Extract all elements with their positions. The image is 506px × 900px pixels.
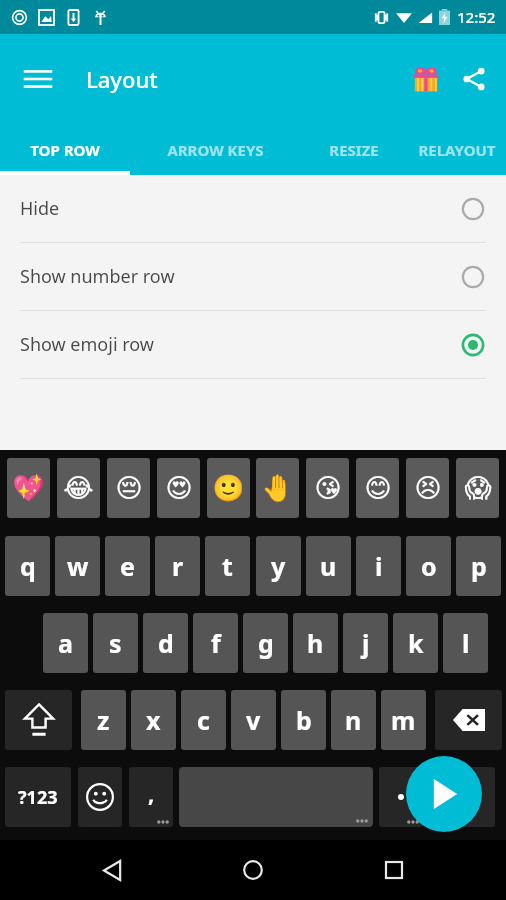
button[interactable]: Emoji — [78, 767, 122, 827]
button[interactable]: 😘 — [306, 458, 349, 518]
button[interactable]: g — [243, 613, 288, 673]
staticText: Show number row — [20, 264, 175, 289]
staticText: q — [20, 549, 36, 583]
button[interactable]: k — [393, 613, 438, 673]
button[interactable]: ARROW KEYS — [130, 124, 300, 175]
staticText: 💖 — [12, 473, 45, 503]
staticText: n — [345, 703, 362, 737]
button[interactable]: Show number row — [0, 243, 506, 310]
button[interactable]: RESIZE — [300, 124, 408, 175]
button[interactable]: ?123 — [5, 767, 71, 827]
staticText: e — [120, 549, 135, 583]
staticText: a — [58, 626, 73, 660]
staticText: ?123 — [18, 785, 58, 810]
button[interactable]: z — [81, 690, 126, 750]
staticText: h — [307, 626, 324, 660]
staticText: 😔 — [115, 473, 143, 503]
staticText: 🙂 — [212, 473, 245, 503]
button[interactable]: Backspace — [435, 690, 502, 750]
button[interactable]: 😍 — [157, 458, 200, 518]
staticText: l — [462, 626, 470, 660]
button[interactable]: , — [129, 767, 173, 827]
button[interactable]: Home — [225, 842, 281, 898]
button[interactable]: 🤚 — [256, 458, 299, 518]
button[interactable]: f — [193, 613, 238, 673]
button[interactable]: RELAYOUT — [408, 124, 506, 175]
staticText: TOP ROW — [30, 140, 100, 160]
staticText: 😍 — [165, 473, 193, 503]
staticText: s — [109, 626, 122, 660]
button[interactable]: 😱 — [456, 458, 499, 518]
button[interactable]: x — [131, 690, 176, 750]
staticText: d — [158, 626, 174, 660]
staticText: 😘 — [314, 473, 342, 503]
button[interactable]: i — [356, 536, 401, 596]
staticText: g — [258, 626, 274, 660]
button[interactable]: Navigation drawer — [14, 55, 62, 103]
staticText: 😊 — [364, 473, 392, 503]
button[interactable]: 😔 — [107, 458, 150, 518]
button[interactable]: e — [105, 536, 150, 596]
button[interactable]: Hide — [0, 175, 506, 242]
button[interactable]: a — [43, 613, 88, 673]
staticText: j — [362, 626, 370, 660]
staticText: Show emoji row — [20, 332, 154, 357]
button[interactable]: o — [406, 536, 451, 596]
button[interactable]: v — [231, 690, 276, 750]
staticText: r — [172, 549, 184, 583]
button[interactable]: n — [331, 690, 376, 750]
staticText: o — [421, 549, 437, 583]
staticText: 😣 — [414, 473, 442, 503]
button[interactable]: c — [181, 690, 226, 750]
button[interactable] — [379, 767, 423, 827]
staticText: t — [222, 549, 233, 583]
staticText: w — [67, 549, 89, 583]
staticText: u — [320, 549, 337, 583]
staticText: RELAYOUT — [418, 140, 496, 160]
staticText: b — [296, 703, 312, 737]
staticText: Layout — [86, 64, 158, 94]
button[interactable]: s — [93, 613, 138, 673]
button[interactable]: u — [306, 536, 351, 596]
button[interactable]: t — [205, 536, 250, 596]
button[interactable]: Back — [85, 842, 141, 898]
staticText: 12:52 — [457, 7, 496, 27]
button[interactable]: q — [5, 536, 50, 596]
staticText: y — [271, 549, 286, 583]
button[interactable]: p — [456, 536, 501, 596]
button[interactable]: y — [256, 536, 301, 596]
button[interactable]: b — [281, 690, 326, 750]
staticText: z — [97, 703, 110, 737]
staticText: RESIZE — [329, 140, 379, 160]
button[interactable]: Share — [450, 55, 498, 103]
staticText: ARROW KEYS — [167, 140, 264, 160]
button[interactable]: 🙂 — [207, 458, 250, 518]
button[interactable]: 😊 — [356, 458, 399, 518]
button[interactable]: Space — [179, 767, 373, 827]
button[interactable]: h — [293, 613, 338, 673]
staticText: p — [471, 549, 487, 583]
button[interactable]: d — [143, 613, 188, 673]
button[interactable]: Shift — [5, 690, 72, 750]
button[interactable]: r — [155, 536, 200, 596]
button[interactable]: Gift — [402, 55, 450, 103]
staticText: f — [211, 626, 221, 660]
button[interactable]: Enter — [429, 767, 495, 827]
button[interactable]: l — [443, 613, 488, 673]
button[interactable]: 💖 — [7, 458, 50, 518]
button[interactable]: Recents — [366, 842, 422, 898]
staticText: 🤚 — [261, 473, 294, 503]
button[interactable]: TOP ROW — [0, 124, 130, 175]
staticText: v — [246, 703, 261, 737]
button[interactable]: w — [55, 536, 100, 596]
staticText: 😂 — [63, 473, 94, 503]
staticText: Hide — [20, 196, 60, 221]
staticText: , — [148, 778, 155, 808]
button[interactable]: j — [343, 613, 388, 673]
staticText: x — [146, 703, 161, 737]
button[interactable]: 😣 — [406, 458, 449, 518]
button[interactable]: m — [381, 690, 426, 750]
button[interactable]: 😂 — [57, 458, 100, 518]
button[interactable]: Play — [406, 756, 482, 832]
button[interactable]: Show emoji row — [0, 311, 506, 378]
